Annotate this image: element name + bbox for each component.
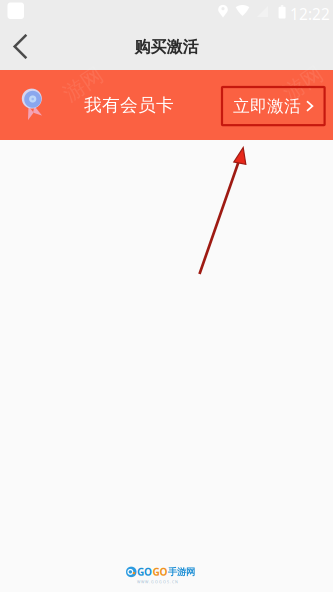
staticText: W W W . G O G O 5 . C N	[137, 579, 178, 584]
button[interactable]: 立即激活	[222, 87, 325, 125]
staticText: GO	[137, 565, 152, 579]
staticText: 购买激活	[134, 37, 198, 57]
staticText: 我有会员卡	[84, 94, 174, 116]
staticText: 游网	[282, 70, 324, 97]
button[interactable]: Back	[0, 22, 44, 70]
staticText: 手游网	[168, 566, 195, 578]
staticText: 游网	[62, 71, 104, 98]
staticText: 立即激活	[233, 95, 301, 117]
staticText: 12:22	[290, 3, 330, 24]
staticText: GO	[152, 565, 167, 579]
